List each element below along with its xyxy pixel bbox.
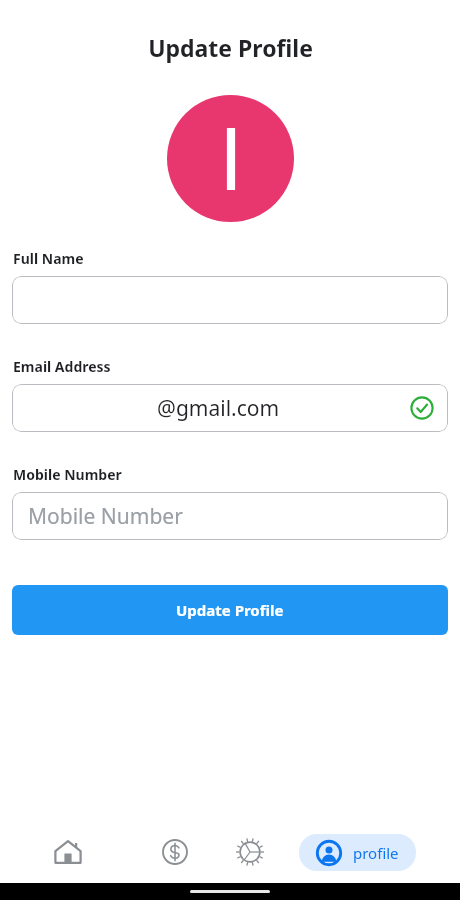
button[interactable]: Profile photo	[167, 95, 294, 222]
staticText: Update Profile	[176, 600, 284, 620]
button[interactable]	[12, 276, 448, 324]
button[interactable]: Settings	[215, 821, 285, 883]
staticText: Email Address	[13, 357, 111, 376]
staticText: profile	[353, 843, 399, 863]
button[interactable]: Payments	[135, 821, 215, 883]
button[interactable]: Update Profile	[12, 585, 448, 635]
staticText: Update Profile	[148, 32, 313, 63]
staticText: Full Name	[13, 249, 84, 268]
staticText: @gmail.com	[157, 394, 280, 423]
button[interactable]: @gmail.com	[12, 384, 448, 432]
button[interactable]: Home	[0, 821, 135, 883]
staticText: Mobile Number	[28, 502, 183, 531]
staticText: Mobile Number	[13, 465, 122, 484]
button[interactable]: profile	[299, 834, 416, 871]
button[interactable]: Mobile Number	[12, 492, 448, 540]
